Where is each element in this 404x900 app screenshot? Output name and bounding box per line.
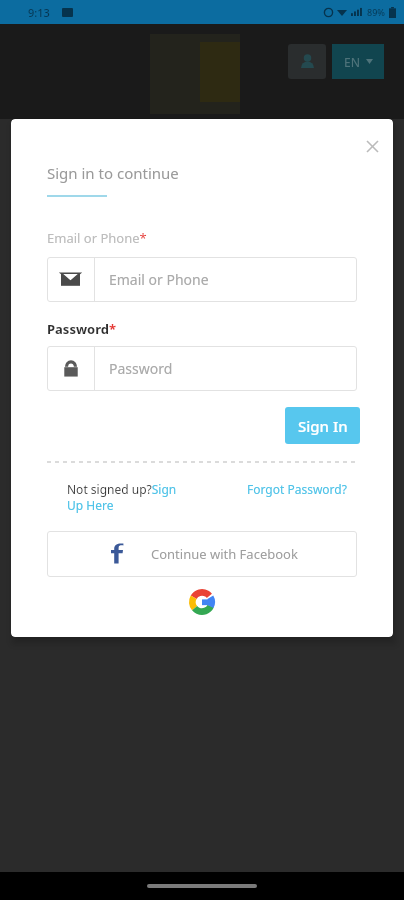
button[interactable]: Account — [288, 44, 326, 79]
staticText: Forgot Password? — [247, 481, 347, 497]
button[interactable]: Continue with Facebook — [47, 531, 357, 577]
button[interactable]: Password — [47, 346, 357, 391]
staticText: Email or Phone* — [47, 229, 147, 247]
staticText: Not signed up?Sign Up Here — [67, 481, 177, 513]
button[interactable]: Close — [359, 133, 385, 159]
button[interactable]: Forgot Password? — [247, 481, 347, 497]
staticText: 89% — [367, 6, 385, 18]
button[interactable]: Not signed up?Sign Up Here — [67, 481, 177, 513]
staticText: Sign In — [298, 416, 348, 436]
staticText: Continue with Facebook — [151, 545, 298, 563]
staticText: Sign in to continue — [47, 163, 179, 183]
button[interactable]: Continue with Google — [185, 585, 219, 619]
staticText: Password* — [47, 320, 116, 338]
button[interactable]: Email or Phone — [47, 257, 357, 302]
staticText: Email or Phone — [109, 270, 209, 289]
staticText: Password — [109, 359, 173, 378]
staticText: EN — [344, 54, 360, 70]
button[interactable]: EN — [332, 44, 384, 79]
staticText: 9:13 — [28, 5, 50, 20]
button[interactable]: Sign In — [285, 407, 360, 444]
